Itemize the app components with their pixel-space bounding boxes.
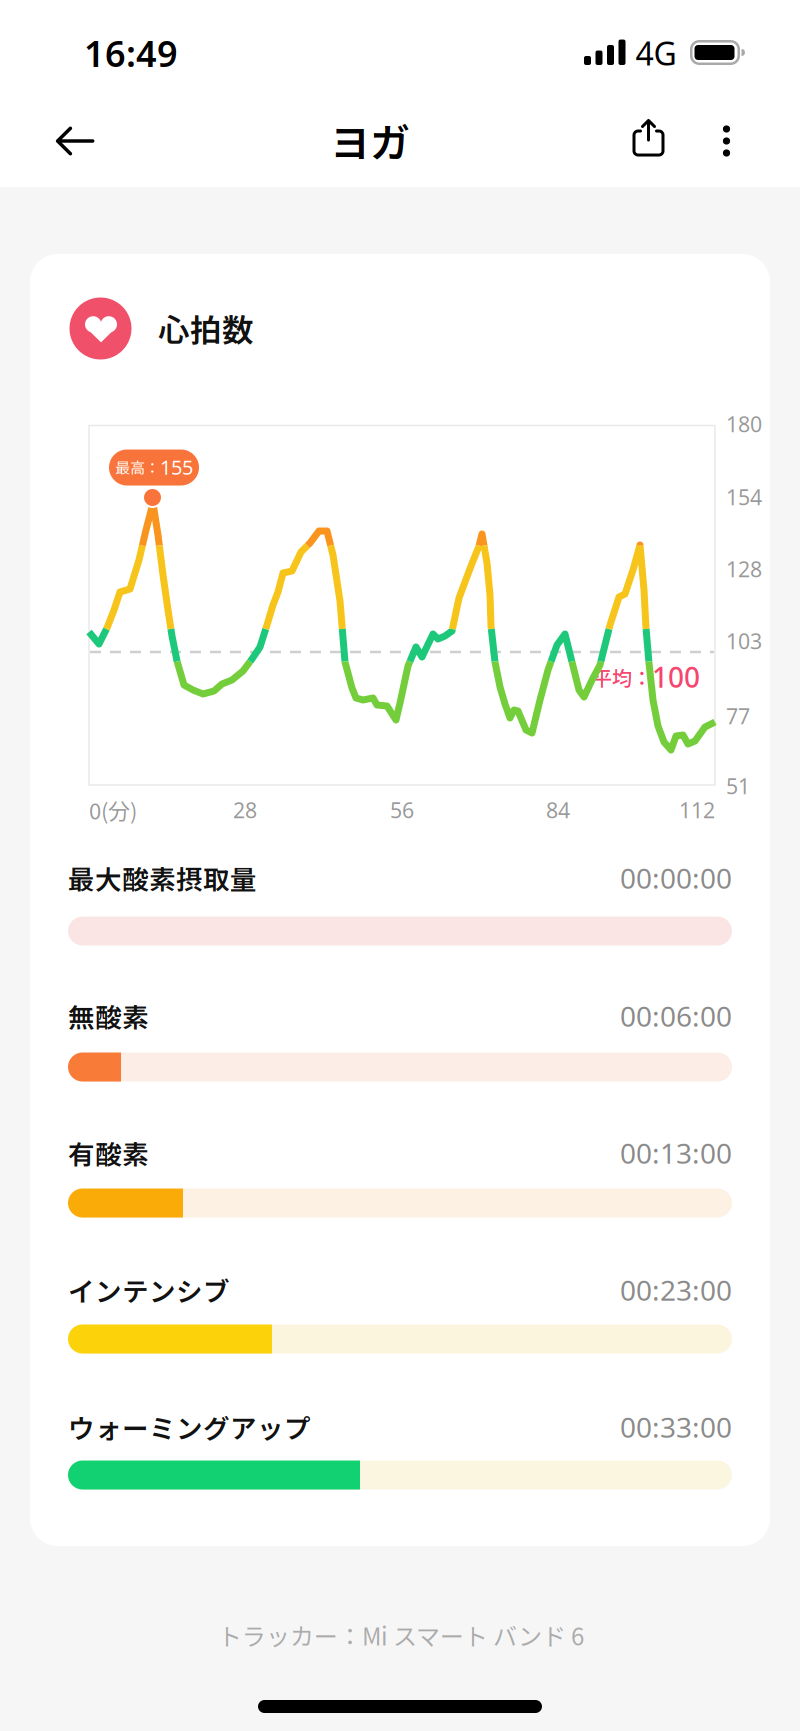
staticText: ヨガ xyxy=(330,111,410,169)
staticText: トラッカー：Mi スマート バンド 6 xyxy=(218,1618,584,1652)
staticText: 平均： xyxy=(592,662,652,691)
staticText: 心拍数 xyxy=(158,305,254,351)
button[interactable] xyxy=(704,118,748,162)
staticText: 0(分) xyxy=(89,794,137,826)
staticText: 51 xyxy=(726,772,750,800)
staticText: 00:33:00 xyxy=(620,1408,732,1446)
staticText: 最高： xyxy=(115,456,160,478)
staticText: 128 xyxy=(726,555,762,583)
staticText: 77 xyxy=(726,702,750,730)
staticText: 16:49 xyxy=(84,29,178,77)
staticText: 00:06:00 xyxy=(620,997,732,1035)
staticText: 180 xyxy=(726,410,762,438)
staticText: 4G xyxy=(635,32,676,74)
button[interactable] xyxy=(624,114,672,162)
staticText: 112 xyxy=(679,796,715,824)
staticText: 155 xyxy=(160,454,193,480)
staticText: 00:13:00 xyxy=(620,1134,732,1172)
staticText: 56 xyxy=(390,796,414,824)
staticText: ウォーミングアップ xyxy=(68,1408,311,1446)
staticText: 最大酸素摂取量 xyxy=(68,859,257,897)
staticText: 28 xyxy=(233,796,257,824)
staticText: 無酸素 xyxy=(68,997,149,1035)
staticText: 84 xyxy=(546,796,570,824)
staticText: 154 xyxy=(726,483,762,511)
staticText: 有酸素 xyxy=(68,1134,149,1172)
button[interactable] xyxy=(52,119,96,163)
staticText: 00:23:00 xyxy=(620,1271,732,1309)
staticText: 103 xyxy=(726,627,762,655)
staticText: 100 xyxy=(652,658,700,696)
staticText: 00:00:00 xyxy=(620,859,732,897)
staticText: インテンシブ xyxy=(68,1271,230,1309)
